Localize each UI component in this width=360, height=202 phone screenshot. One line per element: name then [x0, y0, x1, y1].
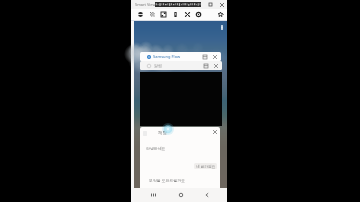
staticText: 알림 [154, 63, 162, 68]
button[interactable]: Pattern [147, 9, 157, 19]
staticText: 네 반가워요 [196, 164, 216, 169]
button[interactable]: Device [170, 9, 180, 19]
button[interactable]: Dismiss [211, 53, 218, 60]
staticText: Samsung Flow [153, 54, 181, 59]
button[interactable]: Favourite [215, 9, 225, 19]
button[interactable]: Close chat [211, 128, 219, 136]
button[interactable]: Close [218, 1, 225, 8]
button[interactable]: 알림 [140, 61, 222, 70]
button[interactable]: Settings [193, 9, 203, 19]
button[interactable]: Home [175, 189, 187, 201]
button[interactable]: Recents [147, 189, 159, 201]
staticText: 무엇을 도와드릴까요 [149, 178, 186, 183]
button[interactable]: Samsung Flow [140, 52, 221, 61]
button[interactable]: Mute [135, 9, 145, 19]
button[interactable]: 채팅 [140, 127, 220, 188]
button[interactable]: Video [140, 72, 222, 126]
button[interactable]: Maximize [207, 1, 214, 8]
button[interactable]: Dismiss [212, 62, 219, 69]
staticText: 채팅 [158, 130, 167, 136]
staticText: 안녕하세요 [146, 146, 166, 151]
button[interactable]: Resize [182, 9, 192, 19]
button[interactable]: Fullscreen [158, 9, 168, 19]
button[interactable]: Expand [201, 53, 208, 60]
button[interactable]: More options [217, 23, 226, 32]
staticText: Smart View - [135, 2, 158, 7]
button[interactable]: Back [201, 189, 213, 201]
button[interactable]: Expand [202, 62, 209, 69]
